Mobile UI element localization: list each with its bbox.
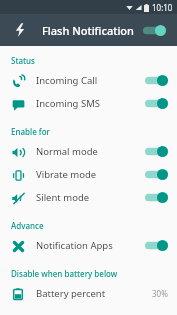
staticText: Silent mode (36, 191, 90, 204)
staticText: Incoming SMS (36, 97, 100, 110)
staticText: 10:10 (152, 2, 173, 13)
staticText: Battery percent (36, 287, 106, 300)
button[interactable]: Incoming Call (0, 69, 177, 92)
button[interactable]: Battery percent (0, 282, 177, 305)
staticText: Vibrate mode (36, 168, 97, 181)
staticText: Flash Notification (42, 23, 134, 38)
button[interactable]: Silent mode (0, 186, 177, 209)
button[interactable]: Enable flash notification (140, 22, 169, 39)
button[interactable]: Normal mode (0, 140, 177, 163)
button[interactable]: Vibrate mode (0, 163, 177, 186)
staticText: Advance (11, 220, 44, 231)
button[interactable]: Flash (10, 20, 30, 40)
staticText: Normal mode (36, 145, 98, 158)
button[interactable]: Notification Apps (0, 234, 177, 257)
staticText: Disable when battery below (11, 268, 118, 279)
staticText: 30% (152, 288, 168, 299)
staticText: Status (11, 55, 36, 66)
staticText: Incoming Call (36, 74, 98, 87)
staticText: Enable for (11, 126, 50, 137)
button[interactable]: Incoming SMS (0, 92, 177, 115)
staticText: Notification Apps (36, 239, 113, 252)
